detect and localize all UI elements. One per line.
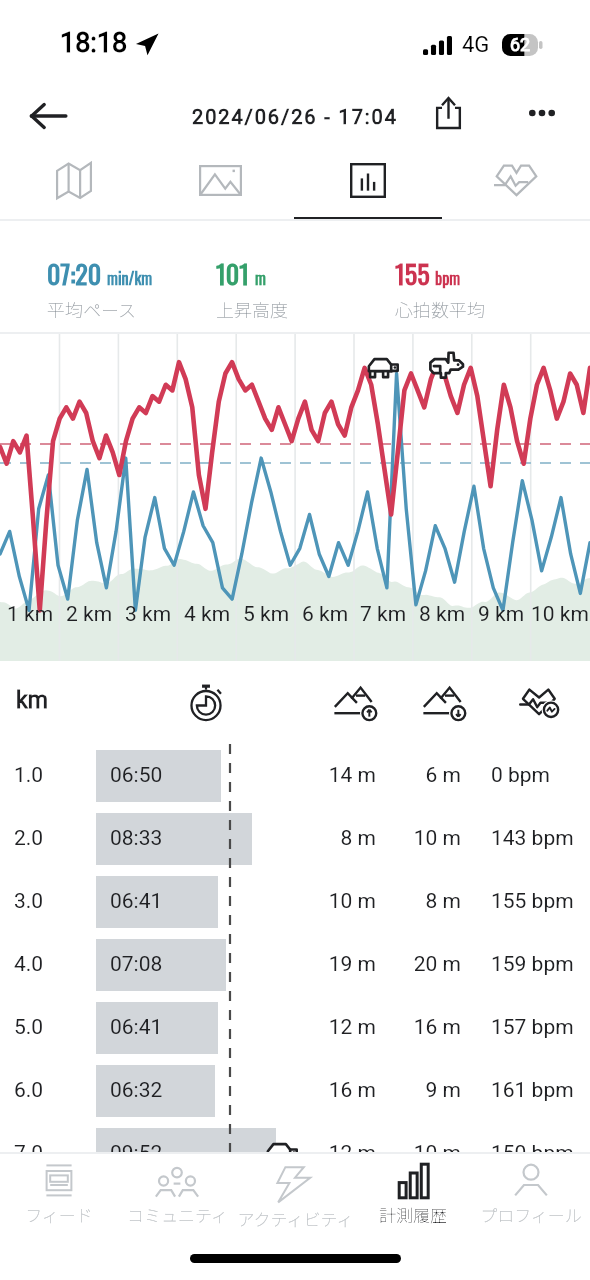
staticText: 62 [510, 34, 531, 55]
button[interactable]: アクティビティ [236, 1161, 354, 1231]
button[interactable]: 1.0 [0, 744, 590, 807]
staticText: 155 bpm [491, 889, 574, 914]
staticText: km [16, 687, 48, 714]
staticText: 16 m [413, 1015, 461, 1040]
button[interactable]: 3.0 [0, 870, 590, 933]
staticText: 19 m [328, 952, 376, 977]
staticText: 06:41 [110, 1015, 163, 1040]
staticText: 12 m [328, 1015, 376, 1040]
staticText: 計測履歴 [379, 1202, 447, 1227]
staticText: 4.0 [14, 952, 44, 977]
staticText: bpm [435, 266, 461, 290]
staticText: 143 bpm [491, 826, 574, 851]
button[interactable]: フィード [0, 1161, 118, 1227]
staticText: 10 m [413, 826, 461, 851]
staticText: 10 km [531, 602, 589, 627]
button[interactable]: コミュニティ [118, 1161, 236, 1227]
staticText: 4 km [184, 602, 231, 627]
button[interactable]: 6.0 [0, 1059, 590, 1122]
staticText: 08:33 [110, 826, 163, 851]
staticText: 5 km [243, 602, 290, 627]
staticText: 157 bpm [491, 1015, 574, 1040]
staticText: 8 m [425, 889, 461, 914]
button[interactable]: Share [422, 87, 474, 139]
button[interactable]: Back [22, 90, 74, 142]
staticText: 9 m [425, 1078, 461, 1103]
staticText: コミュニティ [127, 1202, 228, 1227]
staticText: 07:08 [110, 952, 163, 977]
staticText: 5.0 [14, 1015, 44, 1040]
button[interactable]: 計測履歴 [354, 1161, 472, 1227]
button[interactable]: Map [0, 150, 147, 220]
staticText: 18:18 [60, 27, 128, 59]
staticText: 0 bpm [491, 763, 551, 788]
staticText: 心拍数平均 [395, 296, 485, 322]
staticText: 159 bpm [491, 952, 574, 977]
staticText: 155 [395, 254, 430, 293]
staticText: 6 km [302, 602, 349, 627]
staticText: アクティビティ [237, 1206, 354, 1231]
button[interactable]: Heart rate [442, 150, 590, 220]
staticText: 16 m [328, 1078, 376, 1103]
button[interactable]: Charts [294, 150, 442, 220]
button[interactable]: 2.0 [0, 807, 590, 870]
staticText: フィード [25, 1202, 93, 1227]
staticText: min/km [107, 266, 153, 290]
staticText: 06:50 [110, 763, 163, 788]
staticText: 07:20 [47, 254, 102, 293]
staticText: 150 bpm [491, 1141, 574, 1153]
staticText: 2 km [66, 602, 113, 627]
staticText: 7.0 [14, 1141, 44, 1153]
button[interactable]: 5.0 [0, 996, 590, 1059]
staticText: 4G [462, 32, 490, 58]
button[interactable]: プロフィール [472, 1161, 590, 1227]
staticText: 8 m [340, 826, 376, 851]
staticText: 8 km [419, 602, 466, 627]
staticText: 161 bpm [491, 1078, 574, 1103]
staticText: 6 m [425, 763, 461, 788]
button[interactable]: 4.0 [0, 933, 590, 996]
staticText: 20 m [413, 952, 461, 977]
staticText: 7 km [360, 602, 407, 627]
staticText: 101 [216, 254, 250, 293]
button[interactable]: Photos [147, 150, 294, 220]
staticText: 上昇高度 [216, 296, 288, 322]
staticText: m [255, 266, 266, 290]
staticText: 3.0 [14, 889, 44, 914]
staticText: 2.0 [14, 826, 44, 851]
staticText: 06:41 [110, 889, 163, 914]
button[interactable]: More options [516, 87, 568, 139]
staticText: 9 km [478, 602, 525, 627]
button[interactable]: 7.0 [0, 1122, 590, 1153]
staticText: 14 m [328, 763, 376, 788]
staticText: 09:52 [110, 1141, 163, 1153]
staticText: プロフィール [480, 1202, 582, 1227]
staticText: 10 m [328, 889, 376, 914]
staticText: 10 m [413, 1141, 461, 1153]
staticText: 6.0 [14, 1078, 44, 1103]
staticText: 2024/06/26 - 17:04 [192, 105, 398, 128]
staticText: 12 m [328, 1141, 376, 1153]
staticText: 1.0 [14, 763, 44, 788]
staticText: 06:32 [110, 1078, 163, 1103]
staticText: 平均ペース [47, 296, 137, 322]
staticText: 1 km [7, 602, 54, 627]
staticText: 3 km [125, 602, 172, 627]
